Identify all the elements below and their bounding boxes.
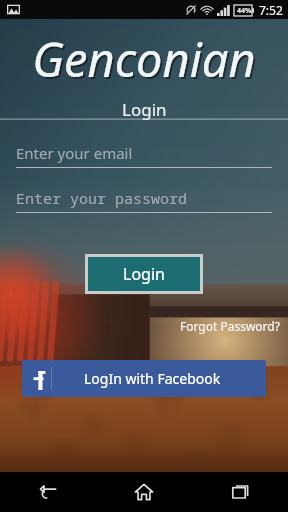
- button[interactable]: Back: [0, 472, 96, 512]
- button[interactable]: LogIn with Facebook: [22, 360, 266, 397]
- button[interactable]: Enter your password: [16, 188, 272, 213]
- button[interactable]: Recents: [192, 472, 288, 512]
- staticText: 44%: [237, 6, 252, 16]
- staticText: Forgot Password?: [180, 318, 280, 334]
- staticText: Genconian: [34, 29, 258, 93]
- button[interactable]: Home: [96, 472, 192, 512]
- staticText: Enter your password: [16, 188, 188, 208]
- button[interactable]: Enter your email: [16, 143, 272, 168]
- staticText: Enter your email: [16, 143, 133, 163]
- staticText: 7:52: [259, 2, 283, 18]
- button[interactable]: Login: [88, 257, 200, 291]
- staticText: Login: [123, 263, 165, 285]
- staticText: LogIn with Facebook: [84, 369, 221, 388]
- staticText: Genconian: [32, 27, 256, 91]
- button[interactable]: Forgot Password?: [178, 316, 282, 336]
- staticText: Login: [122, 98, 167, 121]
